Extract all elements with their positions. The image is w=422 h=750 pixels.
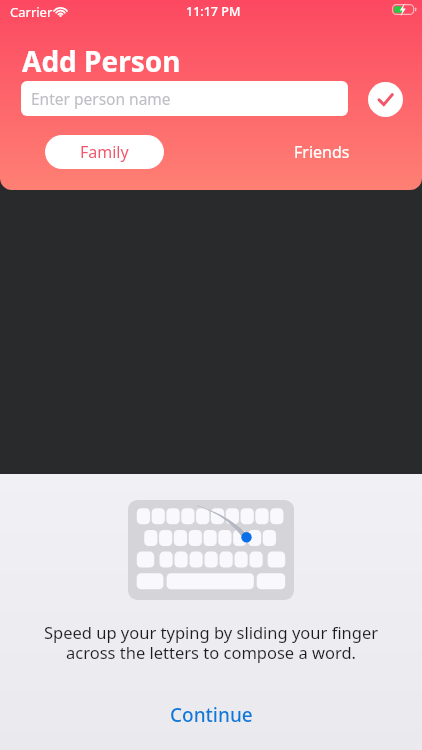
staticText: Enter person name bbox=[31, 88, 171, 109]
button[interactable]: Friends bbox=[262, 135, 381, 169]
button[interactable]: Continue bbox=[144, 696, 279, 734]
staticText: 11:17 PM bbox=[186, 3, 241, 20]
staticText: Friends bbox=[294, 141, 350, 163]
staticText: Family bbox=[80, 141, 129, 163]
button[interactable]: Enter person name bbox=[21, 81, 348, 116]
staticText: Carrier bbox=[10, 3, 53, 21]
staticText: Speed up your typing by sliding your fin… bbox=[0, 621, 422, 664]
staticText: Continue bbox=[170, 702, 253, 728]
button[interactable]: Confirm bbox=[368, 82, 403, 117]
button[interactable]: Family bbox=[45, 135, 164, 169]
staticText: Add Person bbox=[22, 42, 181, 80]
